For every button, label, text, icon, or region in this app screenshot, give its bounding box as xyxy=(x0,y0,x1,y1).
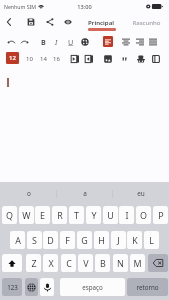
button[interactable]: I xyxy=(50,35,63,48)
button[interactable]: Voice input xyxy=(40,278,54,296)
button[interactable]: Change keyboard xyxy=(25,278,38,296)
staticText: E xyxy=(40,209,45,221)
button[interactable]: Principal xyxy=(86,14,118,32)
staticText: espaço xyxy=(82,283,103,291)
button[interactable]: K xyxy=(127,231,142,249)
button[interactable]: W xyxy=(19,206,34,224)
button[interactable]: Redo xyxy=(18,35,31,48)
button[interactable]: H xyxy=(94,231,109,249)
button[interactable]: o xyxy=(0,182,57,205)
staticText: Rascunho xyxy=(132,18,161,26)
button[interactable]: 123 xyxy=(2,278,22,296)
staticText: U xyxy=(68,37,74,47)
button[interactable]: Link xyxy=(134,52,147,65)
button[interactable]: Share xyxy=(42,14,58,30)
staticText: J xyxy=(117,234,120,246)
button[interactable]: Align right xyxy=(133,35,146,48)
button[interactable]: retorno xyxy=(127,278,168,296)
button[interactable]: Indent xyxy=(68,52,81,65)
button[interactable]: N xyxy=(113,254,128,272)
button[interactable]: E xyxy=(35,206,50,224)
button[interactable]: Preview xyxy=(60,14,76,30)
staticText: a xyxy=(83,189,87,198)
button[interactable]: B xyxy=(95,254,110,272)
button[interactable]: Table xyxy=(149,52,162,65)
button[interactable]: B xyxy=(37,35,50,48)
button[interactable]: Rascunho xyxy=(130,14,162,32)
staticText: L xyxy=(149,234,154,246)
button[interactable]: R xyxy=(52,206,67,224)
staticText: S xyxy=(32,234,37,246)
button[interactable]: Shift xyxy=(2,254,22,272)
button[interactable]: S xyxy=(27,231,42,249)
staticText: V xyxy=(83,257,89,269)
staticText: N xyxy=(117,257,124,269)
button[interactable]: M xyxy=(130,254,145,272)
button[interactable]: Y xyxy=(86,206,101,224)
staticText: I xyxy=(55,37,58,47)
button[interactable]: 10 xyxy=(23,52,36,65)
staticText: U xyxy=(107,209,114,221)
staticText: eu xyxy=(137,189,145,198)
button[interactable]: U xyxy=(103,206,118,224)
button[interactable]: 16 xyxy=(50,52,63,65)
button[interactable]: 12 xyxy=(6,52,19,64)
button[interactable]: A xyxy=(10,231,25,249)
staticText: 10 xyxy=(26,55,33,63)
staticText: 123 xyxy=(7,283,18,291)
button[interactable]: a xyxy=(57,182,113,205)
button[interactable]: X xyxy=(43,254,58,272)
button[interactable]: espaço xyxy=(60,278,125,296)
button[interactable]: O xyxy=(136,206,151,224)
button[interactable]: Back xyxy=(1,14,17,30)
staticText: Z xyxy=(31,257,37,269)
button[interactable]: V xyxy=(78,254,93,272)
staticText: P xyxy=(158,209,164,221)
button[interactable]: U xyxy=(64,35,77,48)
staticText: W xyxy=(22,209,31,221)
button[interactable]: Q xyxy=(2,206,17,224)
staticText: R xyxy=(57,209,63,221)
button[interactable]: Insert image xyxy=(101,52,114,65)
button[interactable]: P xyxy=(153,206,168,224)
button[interactable]: Backspace xyxy=(148,254,168,272)
button[interactable]: Align center xyxy=(119,35,132,48)
button[interactable]: Align left xyxy=(103,36,113,47)
staticText: 13:00 xyxy=(77,3,92,11)
button[interactable]: Save xyxy=(23,14,39,30)
button[interactable]: L xyxy=(144,231,159,249)
staticText: Y xyxy=(91,209,97,221)
button[interactable]: C xyxy=(61,254,76,272)
staticText: F xyxy=(65,234,70,246)
button[interactable]: Text color xyxy=(78,35,91,48)
staticText: T xyxy=(74,209,79,221)
staticText: Principal xyxy=(88,18,114,26)
staticText: 16 xyxy=(53,55,60,63)
button[interactable]: Z xyxy=(26,254,41,272)
button[interactable]: Justify xyxy=(146,35,159,48)
button[interactable]: J xyxy=(111,231,126,249)
button[interactable]: I xyxy=(119,206,134,224)
staticText: M xyxy=(133,257,142,269)
staticText: 14 xyxy=(40,55,47,63)
staticText: 12 xyxy=(9,54,16,62)
staticText: X xyxy=(48,257,54,269)
button[interactable]: T xyxy=(69,206,84,224)
button[interactable]: Quote xyxy=(117,52,130,65)
button[interactable]: G xyxy=(77,231,92,249)
button[interactable]: Undo xyxy=(4,35,17,48)
staticText: B xyxy=(41,37,46,47)
staticText: O xyxy=(140,209,147,221)
button[interactable]: D xyxy=(43,231,58,249)
staticText: I xyxy=(125,209,129,221)
staticText: K xyxy=(132,234,138,246)
button[interactable]: eu xyxy=(113,182,169,205)
staticText: B xyxy=(100,257,106,269)
staticText: A xyxy=(15,234,21,246)
button[interactable]: F xyxy=(60,231,75,249)
staticText: Q xyxy=(6,209,13,221)
button[interactable]: 14 xyxy=(37,52,50,65)
staticText: G xyxy=(81,234,88,246)
button[interactable]: Outdent xyxy=(82,52,95,65)
staticText: C xyxy=(66,257,72,269)
